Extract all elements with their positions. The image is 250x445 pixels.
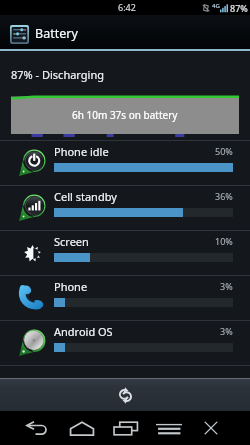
button[interactable]: Refresh: [109, 379, 141, 411]
button[interactable]: Battery: [0, 15, 250, 49]
staticText: 4G: [212, 2, 220, 10]
staticText: Phone: [54, 279, 220, 294]
staticText: 87% - Discharging: [11, 67, 104, 82]
staticText: Battery: [35, 25, 78, 42]
staticText: 3%: [220, 280, 233, 292]
button[interactable]: Back: [17, 411, 59, 445]
button[interactable]: Phone idle: [0, 140, 250, 185]
staticText: 6:42: [118, 1, 136, 13]
staticText: Phone idle: [54, 144, 215, 159]
staticText: 10%: [215, 235, 233, 247]
button[interactable]: Recent apps: [105, 411, 147, 445]
button[interactable]: Home: [61, 411, 103, 445]
button[interactable]: Cell standby: [0, 185, 250, 230]
staticText: 6h 10m 37s on battery: [72, 108, 178, 122]
button[interactable]: Close: [190, 411, 232, 445]
staticText: 87%: [230, 2, 248, 14]
staticText: Screen: [54, 234, 215, 249]
staticText: Cell standby: [54, 189, 215, 204]
button[interactable]: Android OS: [0, 320, 250, 365]
button[interactable]: Screen: [0, 230, 250, 275]
staticText: 3%: [220, 325, 233, 337]
staticText: 50%: [215, 145, 233, 157]
button[interactable]: Phone: [0, 275, 250, 320]
staticText: 36%: [215, 190, 233, 202]
staticText: Android OS: [54, 324, 220, 339]
button[interactable]: Menu: [148, 411, 190, 445]
